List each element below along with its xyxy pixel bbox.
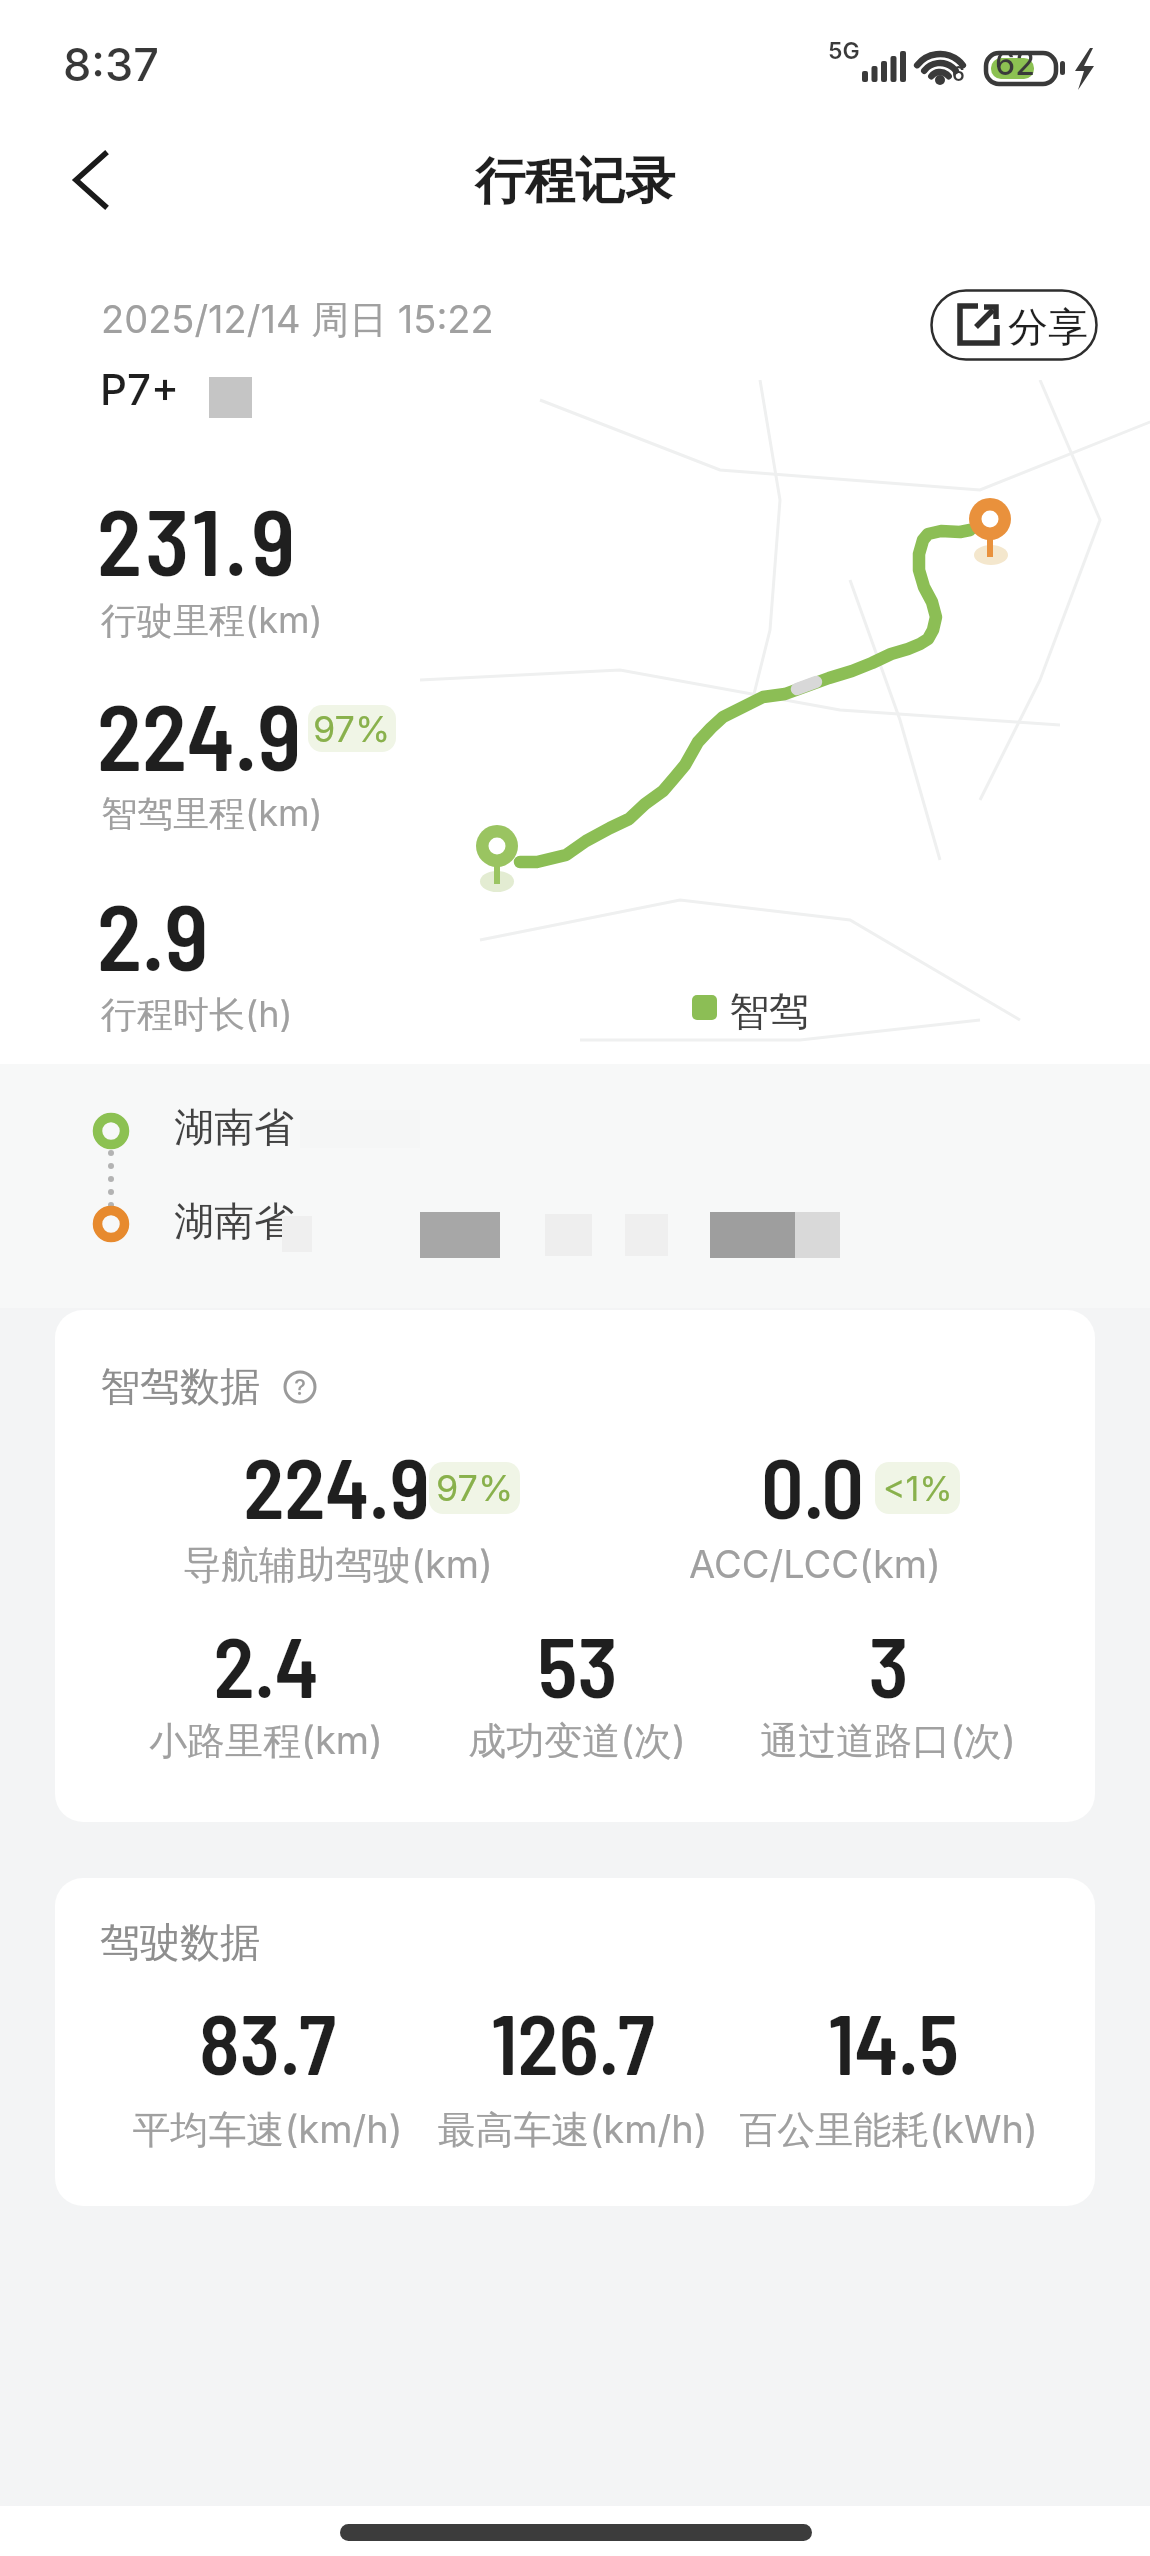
button[interactable]	[930, 289, 1098, 361]
staticText: 224.9	[243, 1435, 430, 1536]
staticText: 智驾里程(km)	[101, 791, 323, 837]
staticText: 湖南省	[174, 1196, 294, 1246]
staticText: 2025/12/14 周日 15:22	[101, 296, 494, 344]
staticText: 导航辅助驾驶(km)	[183, 1541, 493, 1589]
staticText: 8:37	[63, 37, 159, 91]
staticText: 百公里能耗(kWh)	[739, 2106, 1038, 2154]
staticText: 行程时长(h)	[101, 992, 293, 1038]
staticText: 126.7	[491, 1991, 655, 2092]
staticText: 驾驶数据	[100, 1917, 260, 1967]
staticText: ?	[294, 1374, 306, 1401]
staticText: 最高车速(km/h)	[437, 2106, 708, 2154]
staticText: 2.4	[213, 1614, 319, 1715]
staticText: 5G	[828, 37, 860, 65]
staticText: 平均车速(km/h)	[132, 2106, 403, 2154]
staticText: 成功变道(次)	[468, 1717, 686, 1765]
staticText: 3	[868, 1614, 909, 1715]
staticText: <1%	[883, 1468, 953, 1509]
staticText: 97%	[436, 1466, 514, 1510]
staticText: 62	[995, 44, 1035, 83]
staticText: ACC/LCC(km)	[689, 1541, 941, 1587]
staticText: 6	[952, 62, 965, 86]
staticText: 83.7	[199, 1991, 336, 2092]
staticText: P7+	[100, 364, 179, 415]
staticText: 224.9	[97, 679, 302, 789]
staticText: 行程记录	[475, 150, 675, 213]
staticText: 231.9	[97, 484, 300, 594]
staticText: 智驾	[729, 986, 809, 1036]
staticText: 分享	[1008, 302, 1088, 352]
staticText: 小路里程(km)	[149, 1717, 383, 1765]
staticText: 湖南省	[174, 1102, 294, 1152]
staticText: 53	[537, 1614, 618, 1715]
staticText: 智驾数据	[100, 1361, 260, 1411]
staticText: 通过道路口(次)	[760, 1717, 1016, 1765]
staticText: 行驶里程(km)	[101, 598, 323, 644]
staticText: 2.9	[97, 879, 209, 989]
button[interactable]	[60, 140, 120, 220]
staticText: 0.0	[761, 1435, 864, 1536]
staticText: 14.5	[828, 1991, 959, 2092]
staticText: 97%	[313, 707, 391, 751]
